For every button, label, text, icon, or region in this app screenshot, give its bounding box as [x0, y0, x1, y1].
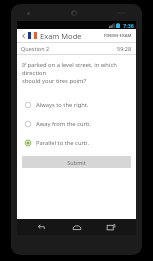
button[interactable]: Recent apps [102, 219, 120, 235]
staticText: Exam Mode [40, 31, 82, 41]
other: France [28, 32, 37, 39]
button[interactable]: Parallel to the curb. [17, 133, 136, 152]
button[interactable]: Back [33, 219, 51, 235]
staticText: If parked on a level street, in which di… [22, 61, 131, 77]
staticText: FINISH EXAM [104, 33, 132, 39]
staticText: Question 2 [21, 45, 50, 52]
staticText: should your tires point? [22, 77, 87, 85]
staticText: Parallel to the curb. [36, 139, 89, 147]
staticText: Away from the curb. [36, 120, 92, 128]
button[interactable]: Submit [22, 156, 131, 168]
button[interactable]: FINISH EXAM [103, 33, 133, 39]
button[interactable]: Back [20, 32, 28, 40]
button[interactable]: Home [68, 219, 86, 235]
staticText: 7:36 [123, 22, 134, 29]
staticText: Submit [67, 159, 86, 166]
staticText: Always to the right. [36, 101, 89, 109]
button[interactable]: Away from the curb. [17, 114, 136, 133]
button[interactable]: Always to the right. [17, 95, 136, 114]
staticText: 59:28 [117, 45, 132, 52]
